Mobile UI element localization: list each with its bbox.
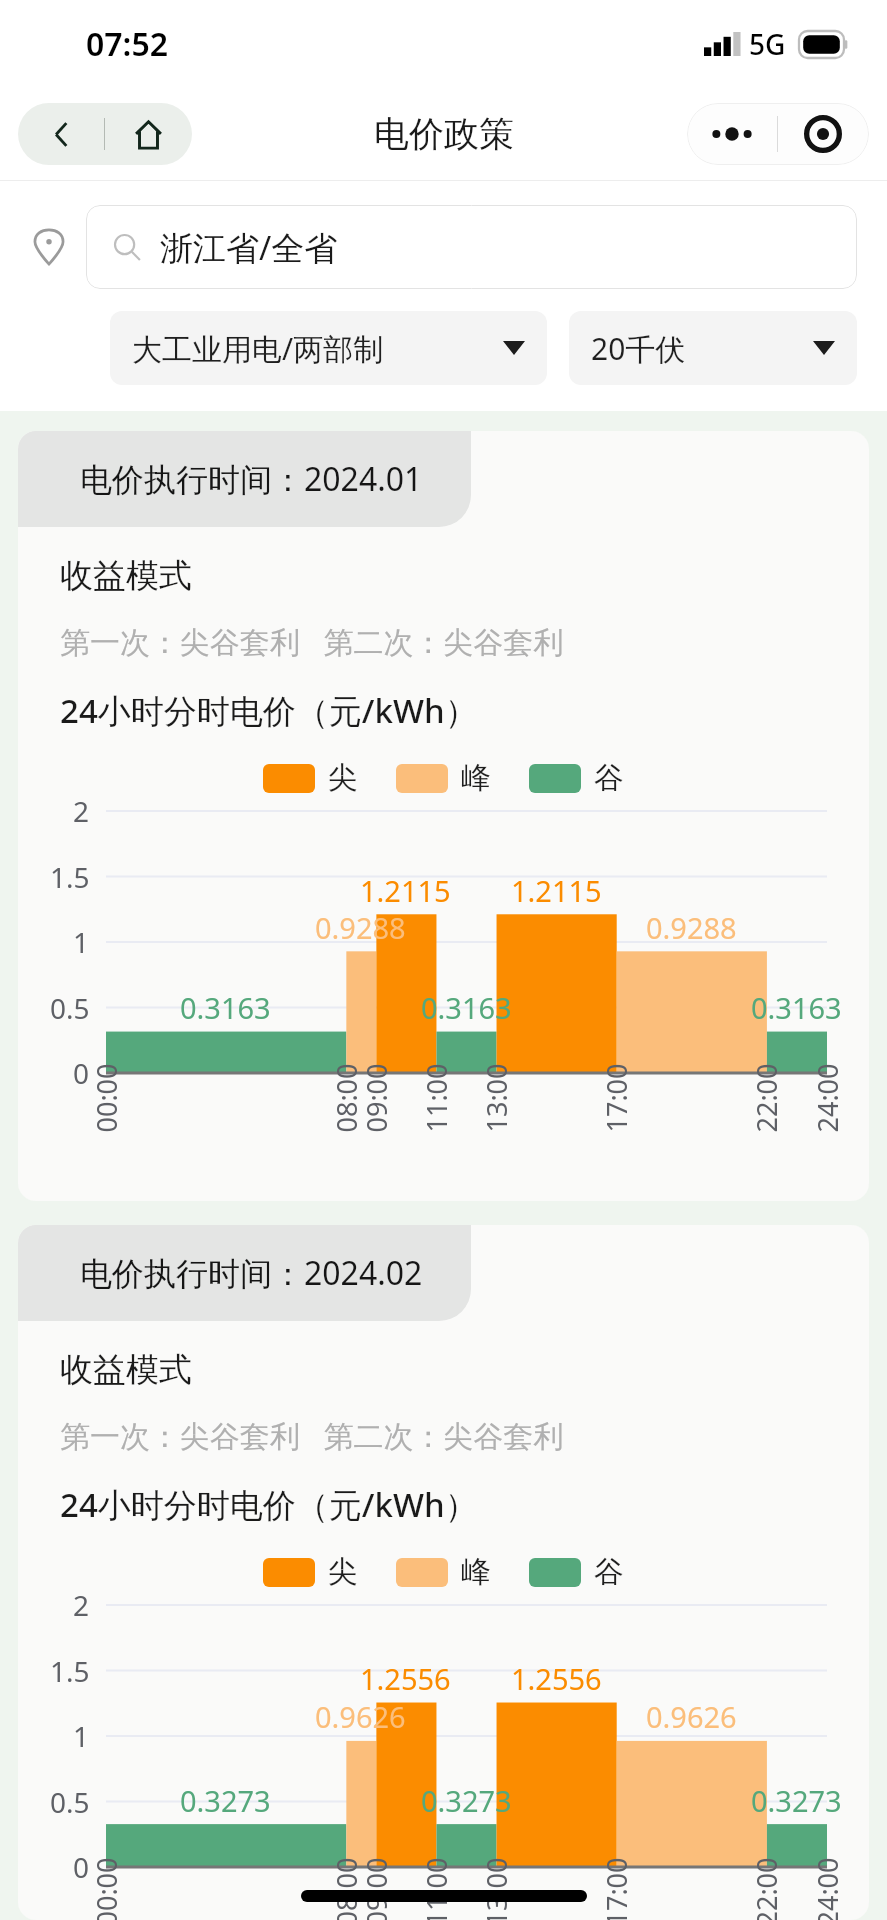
staticText: 谷 bbox=[594, 759, 624, 797]
staticText: 09:00 bbox=[357, 1856, 394, 1920]
staticText: 0 bbox=[73, 1848, 90, 1886]
button[interactable]: Home bbox=[105, 103, 191, 165]
staticText: 24小时分时电价（元/kWh） bbox=[60, 688, 478, 733]
staticText: 0.5 bbox=[50, 989, 90, 1027]
staticText: 峰 bbox=[461, 1553, 491, 1591]
staticText: 1.2115 bbox=[360, 871, 451, 910]
staticText: 08:00 bbox=[327, 1856, 364, 1920]
staticText: 1 bbox=[73, 923, 90, 961]
staticText: 0.3273 bbox=[421, 1781, 512, 1820]
button[interactable]: 大工业用电/两部制 bbox=[110, 311, 547, 385]
staticText: 0.9626 bbox=[646, 1697, 737, 1736]
staticText: 1.2556 bbox=[511, 1659, 602, 1698]
staticText: 0.9626 bbox=[315, 1697, 406, 1736]
staticText: 0.3163 bbox=[751, 988, 842, 1027]
staticText: 尖 bbox=[328, 1553, 358, 1591]
staticText: 20千伏 bbox=[591, 328, 813, 369]
button[interactable]: Back bbox=[18, 103, 104, 165]
staticText: 收益模式 bbox=[60, 1349, 192, 1391]
staticText: 第一次：尖谷套利 第二次：尖谷套利 bbox=[60, 1415, 564, 1456]
staticText: 11:00 bbox=[417, 1856, 454, 1920]
button[interactable]: 20千伏 bbox=[569, 311, 857, 385]
staticText: 2 bbox=[73, 1586, 90, 1624]
staticText: 0.5 bbox=[50, 1783, 90, 1821]
staticText: 电价执行时间：2024.02 bbox=[80, 1251, 423, 1295]
staticText: 5G bbox=[749, 25, 786, 63]
staticText: 17:00 bbox=[597, 1856, 634, 1920]
staticText: 24:00 bbox=[808, 1856, 845, 1920]
staticText: 24小时分时电价（元/kWh） bbox=[60, 1482, 478, 1527]
staticText: 0.3273 bbox=[751, 1781, 842, 1820]
staticText: 07:52 bbox=[86, 22, 169, 66]
staticText: 浙江省/全省 bbox=[160, 225, 338, 270]
button[interactable]: 浙江省/全省 bbox=[86, 205, 857, 289]
button[interactable]: Close bbox=[778, 103, 868, 165]
staticText: 1.5 bbox=[50, 1652, 90, 1690]
staticText: 0.3163 bbox=[421, 988, 512, 1027]
staticText: 09:00 bbox=[357, 1062, 394, 1132]
staticText: 1.2115 bbox=[511, 871, 602, 910]
staticText: 17:00 bbox=[597, 1062, 634, 1132]
staticText: 0.3163 bbox=[180, 988, 271, 1027]
staticText: 0.9288 bbox=[646, 908, 737, 947]
button[interactable]: More options bbox=[687, 103, 777, 165]
staticText: 第一次：尖谷套利 第二次：尖谷套利 bbox=[60, 621, 564, 662]
staticText: 00:00 bbox=[87, 1062, 124, 1132]
staticText: 22:00 bbox=[747, 1856, 784, 1920]
button[interactable]: 电价执行时间：2024.01 bbox=[18, 431, 869, 1201]
staticText: 峰 bbox=[461, 759, 491, 797]
staticText: 24:00 bbox=[808, 1062, 845, 1132]
staticText: 大工业用电/两部制 bbox=[132, 328, 503, 369]
staticText: 2 bbox=[73, 792, 90, 830]
staticText: 0.3273 bbox=[180, 1781, 271, 1820]
staticText: 收益模式 bbox=[60, 555, 192, 597]
staticText: 电价执行时间：2024.01 bbox=[80, 457, 423, 501]
staticText: 08:00 bbox=[327, 1062, 364, 1132]
staticText: 1.5 bbox=[50, 858, 90, 896]
staticText: 电价政策 bbox=[374, 112, 514, 156]
staticText: 1 bbox=[73, 1717, 90, 1755]
other: Location bbox=[30, 228, 68, 266]
staticText: 22:00 bbox=[747, 1062, 784, 1132]
staticText: 13:00 bbox=[477, 1856, 514, 1920]
button[interactable]: 电价执行时间：2024.02 bbox=[18, 1225, 869, 1920]
staticText: 谷 bbox=[594, 1553, 624, 1591]
staticText: 尖 bbox=[328, 759, 358, 797]
staticText: 13:00 bbox=[477, 1062, 514, 1132]
staticText: 00:00 bbox=[87, 1856, 124, 1920]
staticText: 11:00 bbox=[417, 1062, 454, 1132]
staticText: 1.2556 bbox=[360, 1659, 451, 1698]
staticText: 0.9288 bbox=[315, 908, 406, 947]
staticText: 0 bbox=[73, 1054, 90, 1092]
